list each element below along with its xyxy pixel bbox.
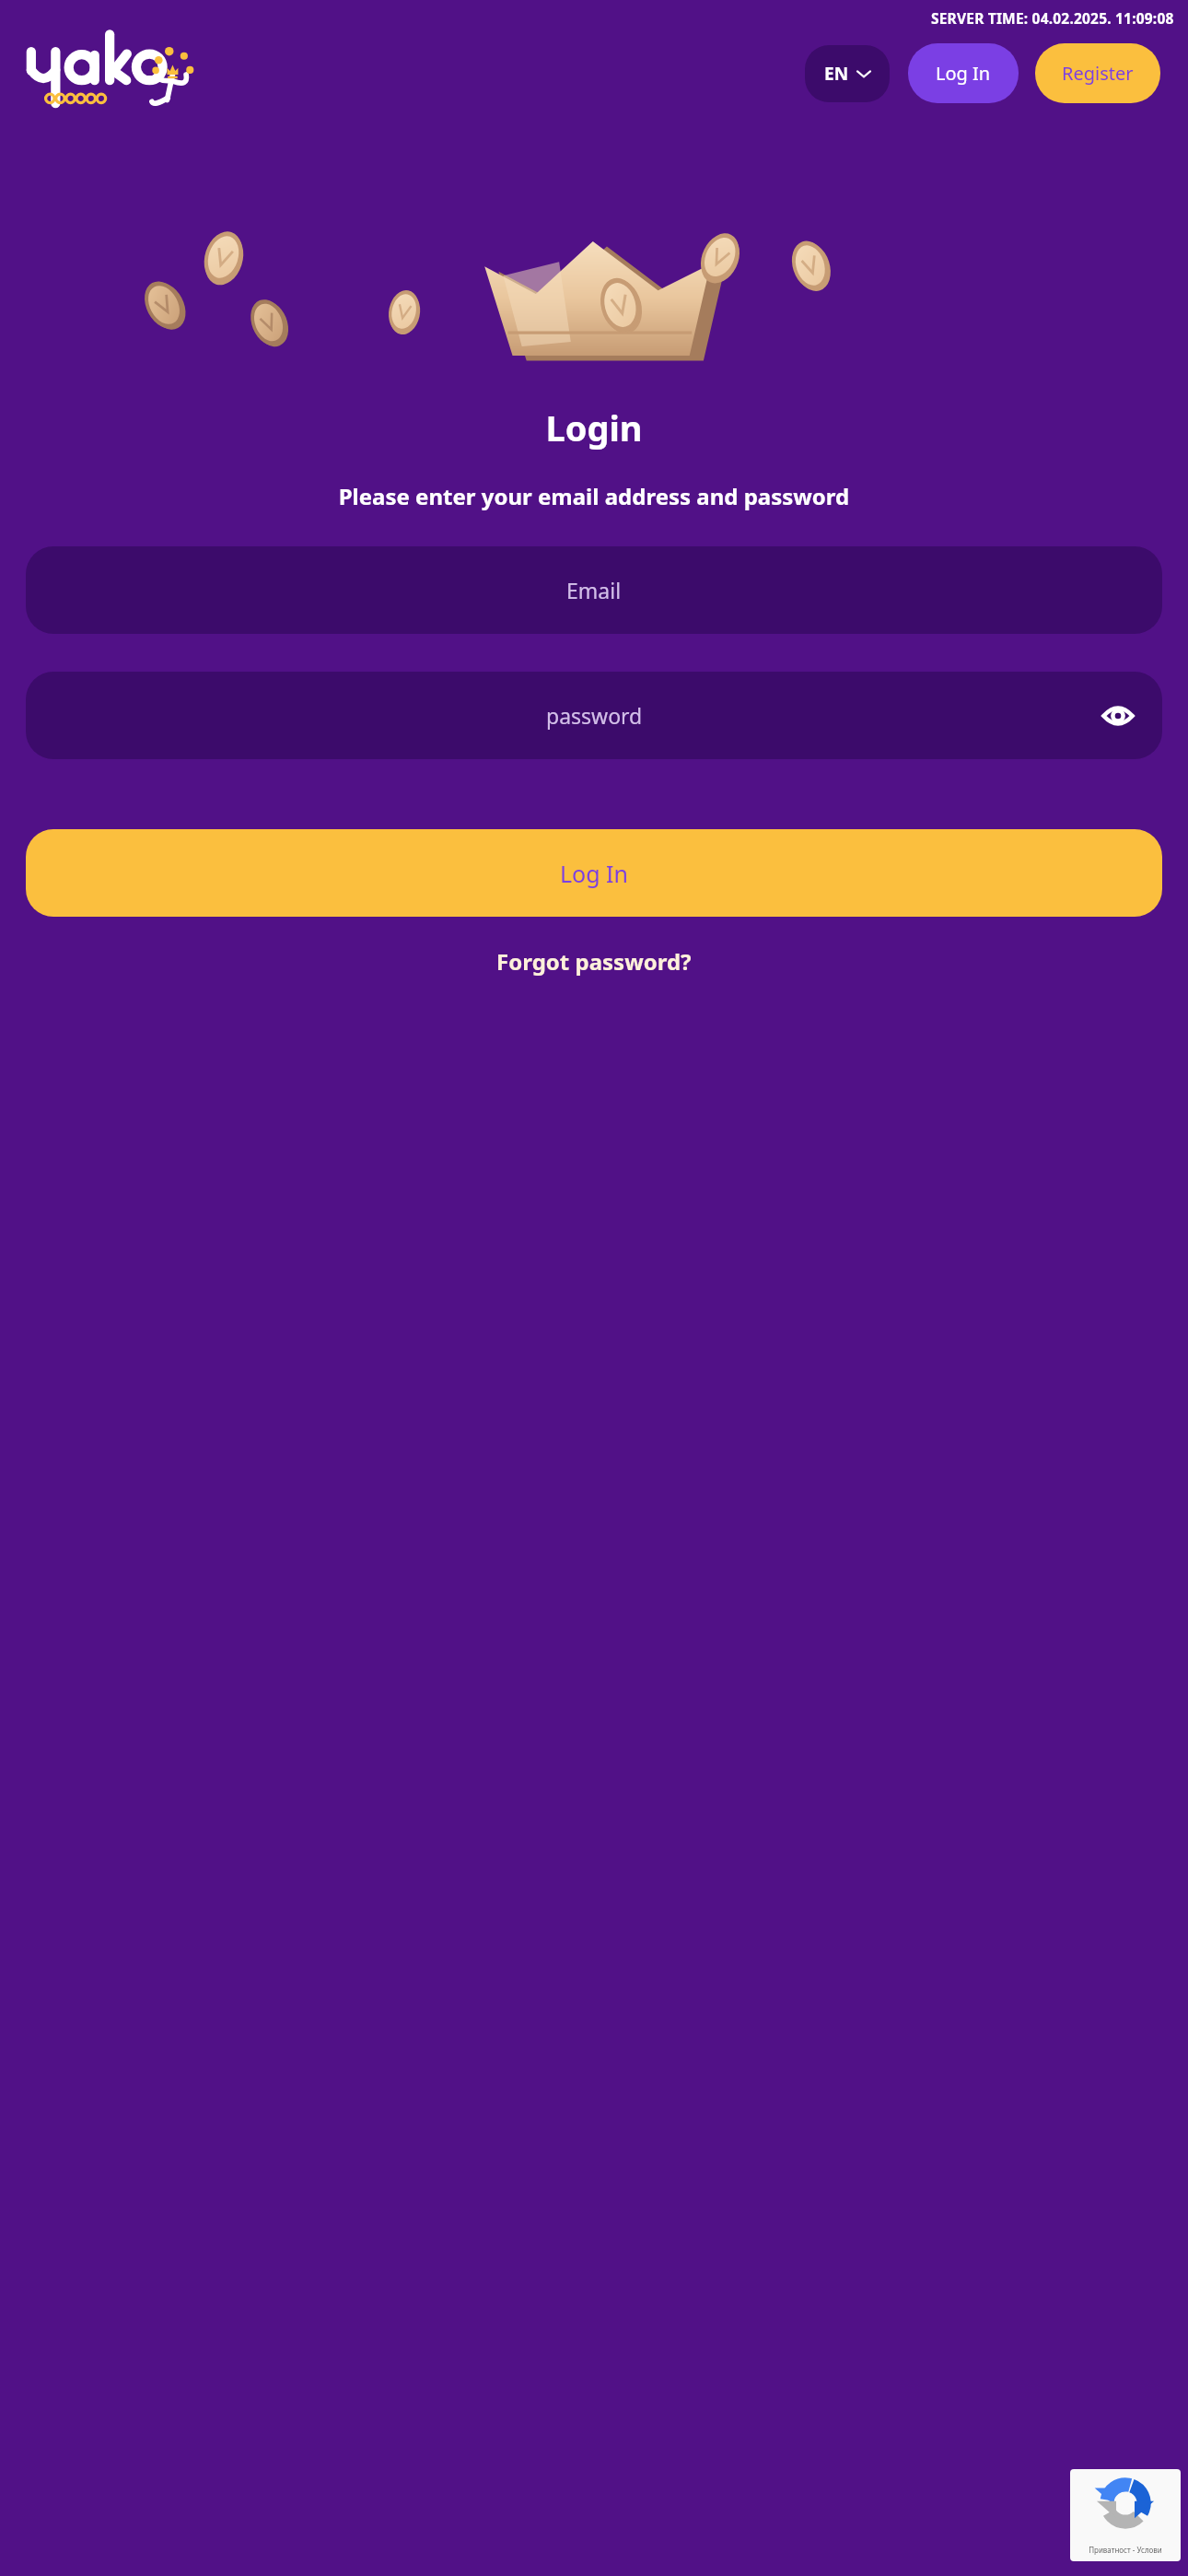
button[interactable]: Language EN: [805, 45, 890, 102]
button[interactable]: Yako Casino home: [26, 35, 205, 111]
button[interactable]: Register: [1035, 43, 1160, 103]
staticText: Please enter your email address and pass…: [0, 481, 1188, 511]
staticText: Log In: [560, 858, 629, 889]
button[interactable]: Log In: [908, 43, 1019, 103]
staticText: Email: [566, 576, 622, 604]
button[interactable]: reCAPTCHA privacy and terms: [1070, 2469, 1181, 2561]
button[interactable]: Email: [26, 546, 1162, 634]
button[interactable]: Log In: [26, 829, 1162, 917]
staticText: EN: [824, 62, 849, 86]
staticText: Forgot password?: [496, 946, 692, 977]
staticText: Log In: [936, 61, 991, 86]
button[interactable]: Show password: [1094, 692, 1142, 740]
button[interactable]: password: [26, 672, 1162, 759]
staticText: SERVER TIME: 04.02.2025. 11:09:08: [931, 8, 1174, 28]
button[interactable]: Forgot password?: [0, 939, 1188, 984]
staticText: password: [546, 701, 643, 730]
staticText: Register: [1062, 61, 1134, 86]
staticText: Login: [0, 404, 1188, 451]
staticText: Приватност - Услови: [1089, 2545, 1162, 2555]
